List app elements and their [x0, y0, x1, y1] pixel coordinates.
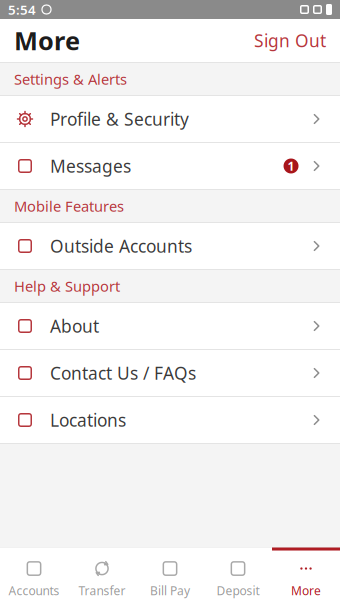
staticText: More	[291, 582, 321, 598]
button[interactable]: More	[272, 548, 340, 606]
button[interactable]: Deposit	[204, 548, 272, 606]
button[interactable]: About	[0, 303, 340, 350]
button[interactable]: Outside Accounts	[0, 223, 340, 270]
staticText: Mobile Features	[14, 196, 124, 216]
staticText: 5:54	[8, 1, 36, 18]
button[interactable]: Accounts	[0, 548, 68, 606]
button[interactable]: Messages	[0, 143, 340, 190]
staticText: Transfer	[78, 582, 125, 598]
button[interactable]: Contact Us / FAQs	[0, 350, 340, 397]
button[interactable]: Bill Pay	[136, 548, 204, 606]
button[interactable]: Transfer	[68, 548, 136, 606]
staticText: Messages	[50, 154, 131, 177]
staticText: Profile & Security	[50, 107, 189, 130]
staticText: About	[50, 314, 99, 337]
staticText: Deposit	[216, 582, 259, 598]
button[interactable]: Profile & Security	[0, 96, 340, 143]
staticText: More	[14, 24, 80, 57]
staticText: Accounts	[8, 582, 59, 598]
staticText: Outside Accounts	[50, 234, 192, 257]
staticText: Settings & Alerts	[14, 69, 127, 89]
staticText: Contact Us / FAQs	[50, 361, 196, 384]
button[interactable]: Sign Out	[248, 23, 332, 58]
staticText: Sign Out	[254, 29, 326, 52]
staticText: 1	[287, 158, 294, 174]
staticText: Locations	[50, 408, 126, 431]
button[interactable]: Locations	[0, 397, 340, 444]
staticText: Help & Support	[14, 276, 120, 296]
staticText: Bill Pay	[150, 582, 190, 598]
